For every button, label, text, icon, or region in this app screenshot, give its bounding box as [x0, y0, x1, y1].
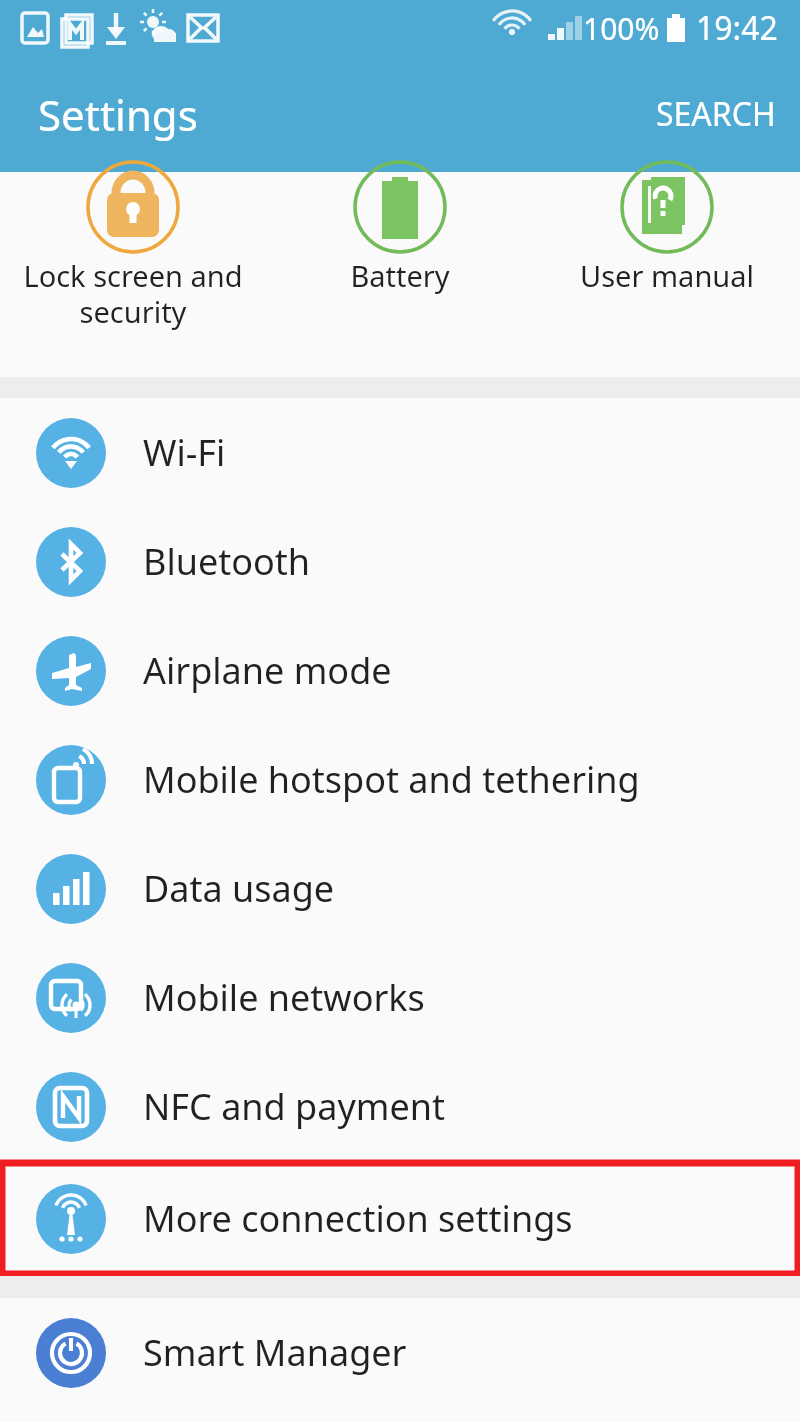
- button[interactable]: Settings: [38, 86, 198, 143]
- button[interactable]: Mobile hotspot and tethering: [0, 725, 800, 834]
- staticText: Settings: [38, 86, 198, 143]
- staticText: Battery: [350, 256, 450, 295]
- staticText: Airplane mode: [143, 646, 392, 695]
- button[interactable]: More connection settings: [0, 1161, 800, 1276]
- staticText: Lock screen and security: [23, 256, 243, 332]
- staticText: Smart Manager: [143, 1328, 407, 1377]
- button[interactable]: Battery: [267, 172, 533, 295]
- staticText: 19:42: [696, 6, 778, 50]
- staticText: More connection settings: [143, 1194, 573, 1243]
- staticText: Mobile hotspot and tethering: [143, 755, 640, 804]
- button[interactable]: Lock screen and security: [0, 172, 266, 332]
- button[interactable]: SEARCH: [632, 80, 800, 148]
- button[interactable]: Data usage: [0, 834, 800, 943]
- button[interactable]: Wi-Fi: [0, 398, 800, 507]
- button[interactable]: Mobile networks: [0, 943, 800, 1052]
- staticText: Wi-Fi: [143, 428, 226, 477]
- button[interactable]: Bluetooth: [0, 507, 800, 616]
- button[interactable]: User manual: [534, 172, 800, 295]
- staticText: User manual: [580, 256, 754, 295]
- staticText: Data usage: [143, 864, 335, 913]
- staticText: Bluetooth: [143, 537, 311, 586]
- staticText: Mobile networks: [143, 973, 425, 1022]
- staticText: SEARCH: [656, 92, 776, 136]
- staticText: NFC and payment: [143, 1082, 446, 1131]
- button[interactable]: NFC and payment: [0, 1052, 800, 1161]
- button[interactable]: Airplane mode: [0, 616, 800, 725]
- button[interactable]: Smart Manager: [0, 1298, 800, 1407]
- staticText: 100%: [583, 8, 660, 49]
